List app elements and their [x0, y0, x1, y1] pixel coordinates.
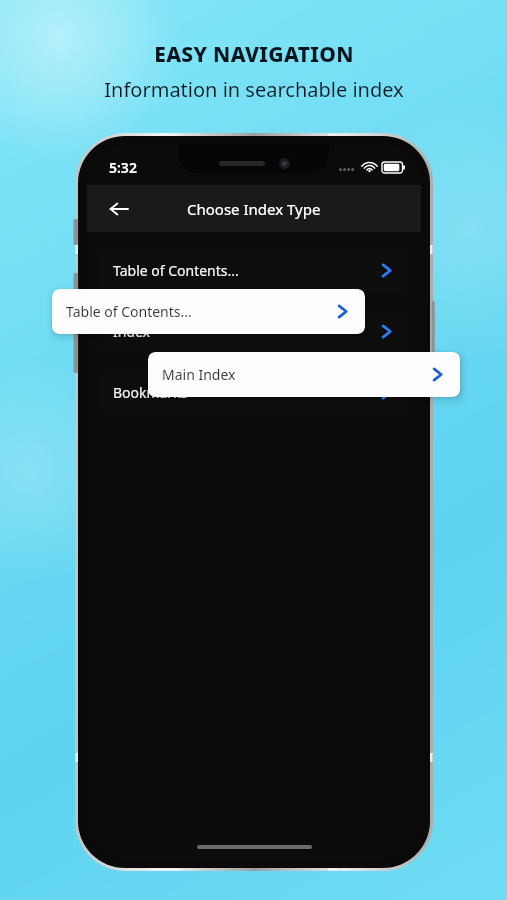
button[interactable]: Table of Contents...	[99, 247, 409, 294]
button[interactable]: Table of Contents...	[52, 289, 365, 334]
button[interactable]: Index	[99, 308, 409, 355]
button[interactable]: Bookmarks	[99, 369, 409, 416]
staticText: Choose Index Type	[187, 199, 321, 219]
staticText: 5:32	[109, 158, 137, 177]
staticText: EASY NAVIGATION	[154, 40, 354, 69]
staticText: Information in searchable index	[104, 76, 404, 103]
staticText: Bookmarks	[113, 383, 188, 402]
button[interactable]: Back	[99, 189, 139, 229]
button[interactable]: Main Index	[148, 352, 460, 397]
staticText: Index	[113, 322, 151, 341]
staticText: Main Index	[162, 365, 236, 384]
staticText: Table of Contents...	[113, 261, 239, 280]
staticText: Table of Contents...	[66, 302, 192, 321]
